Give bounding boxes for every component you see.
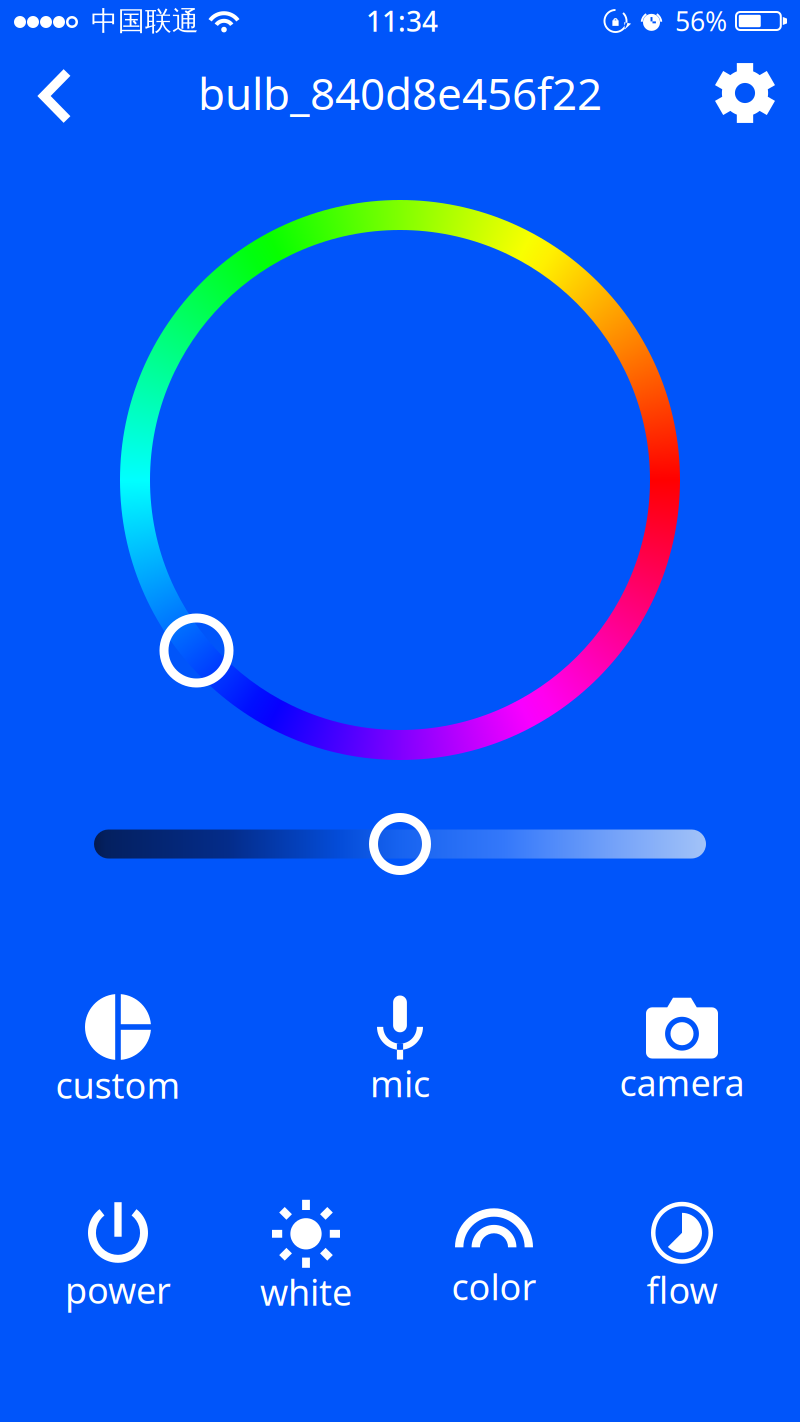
staticText: color bbox=[451, 1262, 536, 1310]
staticText: 56% bbox=[675, 3, 727, 39]
button[interactable]: Back bbox=[22, 54, 89, 137]
staticText: custom bbox=[55, 1061, 180, 1109]
staticText: 11:34 bbox=[366, 2, 438, 40]
staticText: 中国联通 bbox=[91, 5, 199, 37]
staticText: bulb_840d8e456f22 bbox=[198, 64, 602, 122]
button[interactable]: camera bbox=[564, 996, 800, 1106]
button[interactable]: custom bbox=[0, 994, 236, 1109]
staticText: power bbox=[65, 1266, 171, 1314]
staticText: flow bbox=[646, 1266, 717, 1314]
staticText: white bbox=[260, 1268, 352, 1316]
button[interactable]: power bbox=[0, 1202, 236, 1314]
staticText: camera bbox=[619, 1058, 744, 1106]
button[interactable]: white bbox=[236, 1200, 376, 1316]
staticText: mic bbox=[370, 1059, 430, 1107]
button[interactable]: Settings bbox=[702, 52, 788, 134]
button[interactable]: flow bbox=[612, 1202, 752, 1314]
button[interactable]: color bbox=[376, 1205, 612, 1310]
button[interactable]: mic bbox=[236, 995, 564, 1107]
